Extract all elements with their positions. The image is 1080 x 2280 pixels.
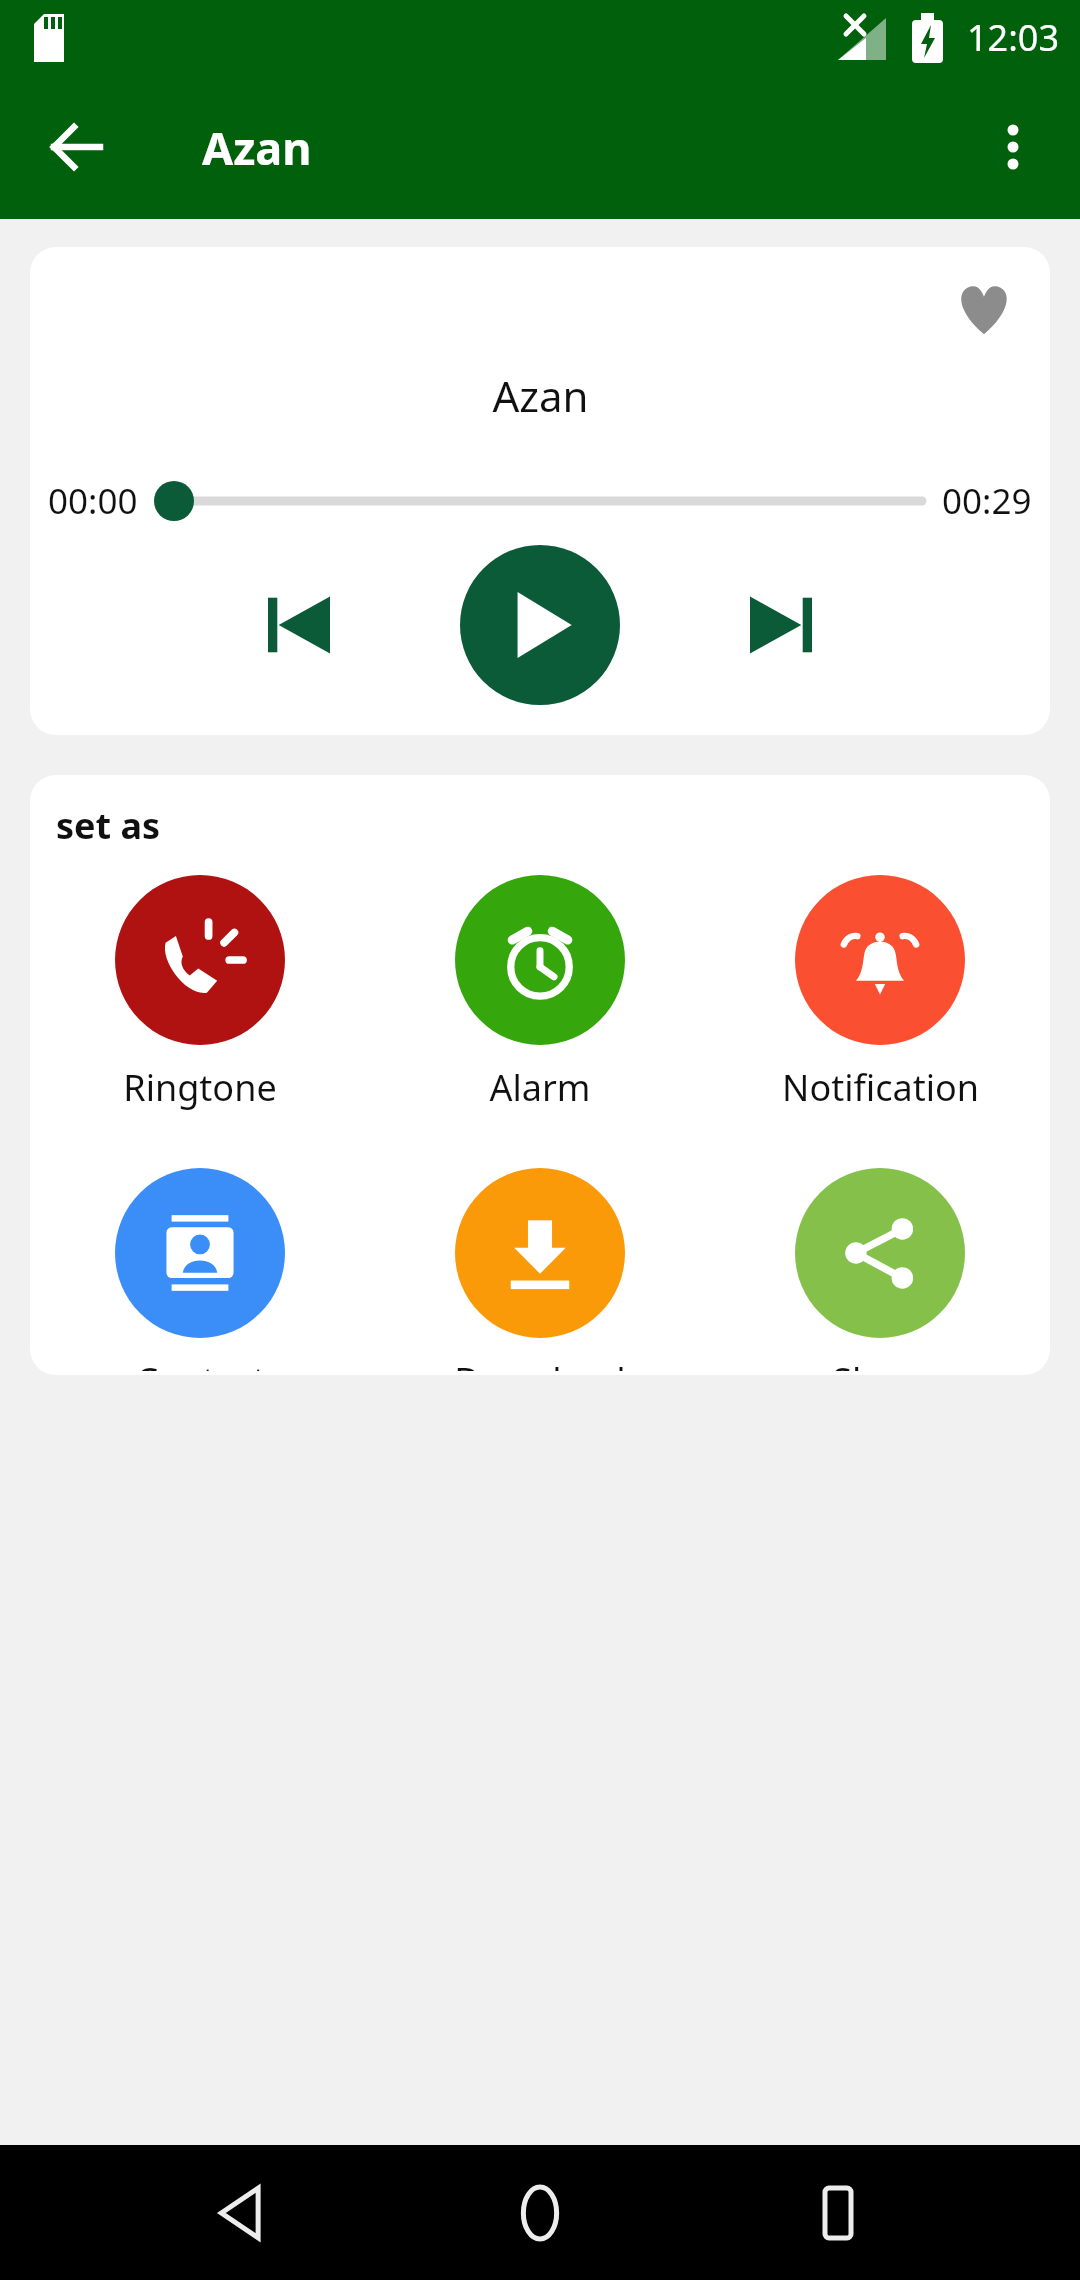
- staticText: Contact: [135, 1356, 266, 1371]
- button[interactable]: Download: [370, 1164, 710, 1375]
- button[interactable]: Contact: [30, 1164, 370, 1375]
- staticText: Azan: [492, 367, 589, 424]
- button[interactable]: Next: [726, 570, 836, 680]
- button[interactable]: Alarm: [370, 871, 710, 1116]
- staticText: 00:29: [942, 477, 1032, 525]
- button[interactable]: Favorite: [942, 267, 1026, 351]
- staticText: 00:00: [48, 477, 138, 525]
- button[interactable]: Ringtone: [30, 871, 370, 1116]
- staticText: Share: [832, 1356, 929, 1371]
- button[interactable]: Recent apps: [783, 2158, 893, 2268]
- button[interactable]: Back: [188, 2158, 298, 2268]
- staticText: Notification: [782, 1063, 979, 1112]
- button[interactable]: Notification: [710, 871, 1050, 1116]
- staticText: Download: [454, 1356, 626, 1371]
- staticText: set as: [56, 801, 161, 850]
- staticText: Ringtone: [123, 1063, 277, 1112]
- button[interactable]: Back: [28, 99, 124, 195]
- button[interactable]: Share: [710, 1164, 1050, 1375]
- button[interactable]: [152, 479, 928, 523]
- button[interactable]: Previous: [244, 570, 354, 680]
- staticText: Azan: [202, 117, 312, 178]
- button[interactable]: Home: [485, 2158, 595, 2268]
- button[interactable]: More options: [968, 102, 1058, 192]
- button[interactable]: Play: [460, 545, 620, 705]
- staticText: 12:03: [967, 13, 1060, 62]
- staticText: Alarm: [489, 1063, 591, 1112]
